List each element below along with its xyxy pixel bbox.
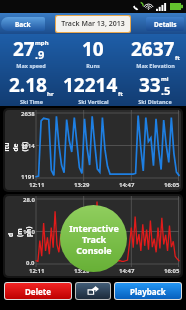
staticText: 27 xyxy=(13,36,35,62)
staticText: Runs xyxy=(86,62,100,69)
staticText: Speed (mph) xyxy=(5,226,33,237)
button[interactable]: 10 xyxy=(62,34,124,70)
staticText: 13:29 xyxy=(74,181,90,189)
staticText: Playback xyxy=(130,286,166,297)
button[interactable]: Altitude (ft) xyxy=(5,110,181,190)
staticText: Delete xyxy=(25,286,52,297)
button[interactable]: Back xyxy=(1,17,45,31)
button[interactable]: 2637 xyxy=(124,34,186,70)
staticText: 1191 xyxy=(21,173,35,181)
button[interactable]: Interactive Track Console xyxy=(60,205,127,272)
button[interactable]: Speed (mph) xyxy=(5,196,181,276)
staticText: 1914 xyxy=(21,142,35,150)
staticText: 12214 xyxy=(63,72,118,98)
staticText: 0.0 xyxy=(26,259,35,267)
staticText: Max speed xyxy=(16,62,46,69)
staticText: 2.18 xyxy=(9,72,47,98)
staticText: 14:47 xyxy=(119,181,135,189)
staticText: ft xyxy=(118,90,123,98)
button[interactable]: Details xyxy=(146,17,184,31)
staticText: 16:05 xyxy=(164,181,180,189)
staticText: mph xyxy=(35,39,49,47)
staticText: Ski Time xyxy=(20,98,43,105)
staticText: 28.0 xyxy=(23,196,35,204)
button[interactable]: Delete xyxy=(5,283,71,299)
staticText: Max Elevation xyxy=(136,62,175,69)
button[interactable]: 27 xyxy=(0,34,62,70)
staticText: Track Mar 13, 2013 xyxy=(61,19,125,29)
staticText: 13:29 xyxy=(74,267,90,275)
staticText: mi xyxy=(161,75,169,83)
button[interactable]: 12214 xyxy=(62,70,124,106)
button[interactable]: 33 xyxy=(124,70,186,106)
staticText: Altitude (ft) xyxy=(5,140,28,151)
staticText: Interactive Track Console xyxy=(69,222,119,256)
button[interactable]: 2.18 xyxy=(0,70,62,106)
staticText: 33 xyxy=(139,72,161,98)
button[interactable]: Playback xyxy=(115,283,181,299)
staticText: Ski Vertical xyxy=(78,98,109,105)
staticText: 2638 xyxy=(21,110,35,118)
staticText: ft xyxy=(175,54,180,62)
staticText: 16:05 xyxy=(164,267,180,275)
staticText: 14:47 xyxy=(119,267,135,275)
staticText: Details xyxy=(154,20,177,29)
staticText: 10 xyxy=(82,36,104,62)
staticText: 12:11 xyxy=(29,181,45,189)
staticText: Ski Distance xyxy=(138,98,172,105)
staticText: 14.0 xyxy=(23,228,35,236)
staticText: 12:11 xyxy=(29,267,45,275)
staticText: .9 xyxy=(35,47,45,62)
staticText: hr xyxy=(47,90,54,98)
staticText: Back xyxy=(15,20,31,29)
staticText: 2637 xyxy=(131,36,175,62)
button[interactable]: Share xyxy=(76,283,110,299)
staticText: .5 xyxy=(161,83,171,98)
